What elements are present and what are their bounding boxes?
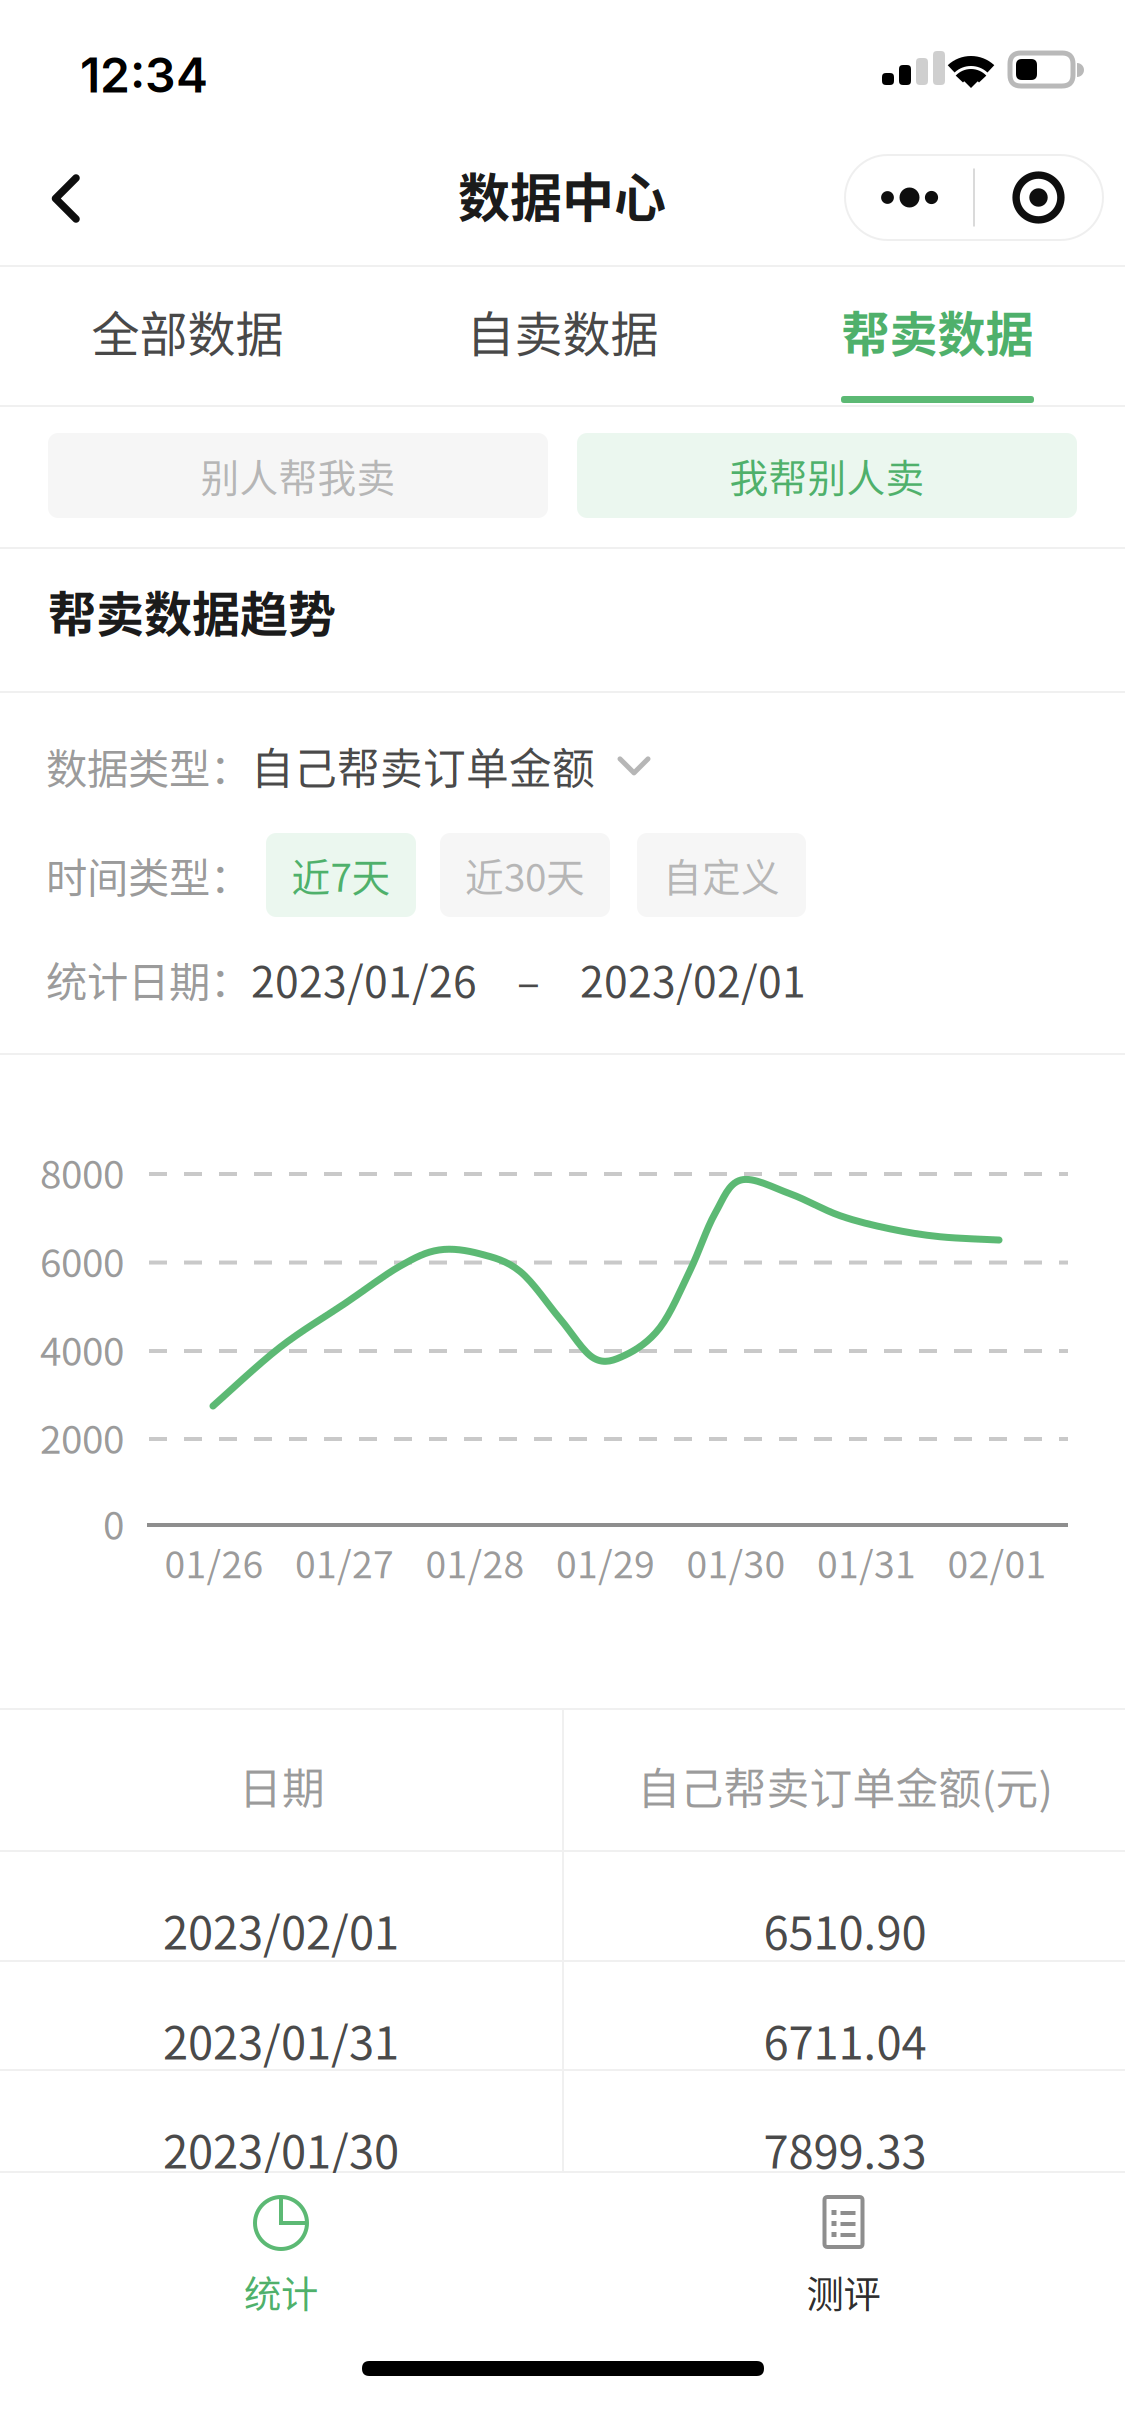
button[interactable]: Close mini program: [974, 155, 1103, 240]
button[interactable]: 近7天: [266, 833, 416, 917]
staticText: 别人帮我卖: [200, 447, 395, 503]
staticText: 自己帮卖订单金额(元): [637, 1755, 1052, 1817]
staticText: 数据类型：: [46, 736, 251, 796]
staticText: 统计日期：: [46, 949, 251, 1009]
staticText: 自定义: [663, 847, 780, 903]
staticText: 2000: [40, 1409, 124, 1465]
staticText: 01/28: [425, 1535, 524, 1589]
staticText: 8000: [40, 1144, 124, 1200]
staticText: 数据中心: [458, 157, 666, 232]
staticText: 近30天: [465, 847, 585, 903]
staticText: 日期: [239, 1755, 325, 1817]
button[interactable]: 自卖数据: [375, 267, 750, 405]
staticText: 6711.04: [763, 2007, 926, 2073]
button[interactable]: 近30天: [440, 833, 610, 917]
staticText: 7899.33: [763, 2116, 926, 2182]
staticText: –: [477, 948, 580, 1010]
button[interactable]: 自己帮卖订单金额: [251, 735, 651, 797]
staticText: 0: [103, 1495, 124, 1551]
staticText: 时间类型：: [46, 845, 251, 905]
staticText: 自卖数据: [466, 296, 658, 365]
button[interactable]: 我帮别人卖: [577, 433, 1077, 518]
staticText: 全部数据: [91, 296, 283, 365]
staticText: 帮卖数据趋势: [48, 576, 336, 645]
staticText: 01/26: [164, 1535, 263, 1589]
staticText: 4000: [40, 1321, 124, 1377]
staticText: 2023/01/26: [251, 948, 477, 1010]
staticText: 帮卖数据: [841, 296, 1033, 365]
button[interactable]: 全部数据: [0, 267, 375, 405]
button[interactable]: 帮卖数据: [750, 267, 1125, 405]
staticText: 12:34: [80, 46, 208, 104]
staticText: 01/27: [295, 1535, 394, 1589]
staticText: 2023/01/31: [163, 2007, 399, 2073]
staticText: 2023/01/30: [163, 2116, 399, 2182]
button[interactable]: More options: [845, 155, 974, 240]
button[interactable]: 统计: [0, 2173, 562, 2343]
staticText: 2023/02/01: [163, 1897, 399, 1963]
button[interactable]: 自定义: [637, 833, 806, 917]
staticText: 01/29: [556, 1535, 655, 1589]
staticText: 近7天: [291, 847, 390, 903]
staticText: 自己帮卖订单金额: [251, 735, 595, 797]
button[interactable]: Back: [36, 148, 132, 258]
staticText: 6000: [40, 1232, 124, 1288]
staticText: 01/31: [817, 1535, 916, 1589]
button[interactable]: 测评: [562, 2173, 1125, 2343]
staticText: 2023/02/01: [580, 948, 806, 1010]
staticText: 6510.90: [763, 1897, 926, 1963]
staticText: 测评: [806, 2265, 880, 2319]
staticText: 我帮别人卖: [729, 447, 924, 503]
button[interactable]: 别人帮我卖: [48, 433, 548, 518]
staticText: 统计: [244, 2265, 318, 2319]
staticText: 01/30: [686, 1535, 785, 1589]
staticText: 02/01: [947, 1535, 1046, 1589]
